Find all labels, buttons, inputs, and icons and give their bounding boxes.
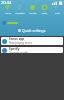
staticText: Sonos app [9,37,25,41]
staticText: Now playing music [9,41,32,45]
button[interactable]: Cast [52,5,63,14]
button[interactable]: Wi-Fi [2,5,13,14]
button[interactable]: Brightness [0,19,64,26]
staticText: Discover weekly [9,51,29,53]
button[interactable]: Sound [27,5,38,14]
staticText: Location [15,11,25,14]
staticText: Auto rotate [41,11,48,15]
button[interactable]: Spotify [1,47,63,53]
staticText: 20:34 [1,0,12,5]
button[interactable]: Quick settings [0,28,64,33]
button[interactable]: Sonos app [1,37,63,45]
staticText: Cast [55,11,60,14]
staticText: Spotify [9,47,20,51]
staticText: Wi-Fi [5,11,11,14]
button[interactable]: Location [14,5,25,14]
staticText: Quick settings [22,28,46,33]
staticText: Sound [29,11,37,14]
button[interactable]: Auto rotate [39,5,50,15]
